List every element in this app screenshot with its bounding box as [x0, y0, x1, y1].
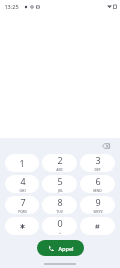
staticText: 5: [57, 175, 63, 187]
staticText: 8: [57, 196, 63, 208]
button[interactable]: 4: [5, 175, 39, 193]
staticText: ABC: [56, 167, 63, 172]
button[interactable]: 9: [80, 196, 115, 214]
staticText: PQRS: [18, 209, 27, 214]
staticText: 7: [20, 196, 26, 208]
button[interactable]: 7: [5, 196, 39, 214]
staticText: MNO: [93, 188, 102, 193]
staticText: WXYZ: [93, 209, 103, 214]
staticText: +: [59, 230, 61, 235]
button[interactable]: 8: [42, 196, 77, 214]
button[interactable]: 6: [80, 175, 115, 193]
button[interactable]: 5: [42, 175, 77, 193]
staticText: 6: [95, 175, 101, 187]
staticText: JKL: [58, 188, 63, 193]
staticText: 3: [95, 154, 101, 166]
button[interactable]: 1: [5, 154, 39, 172]
staticText: 1: [19, 157, 25, 169]
button[interactable]: 0: [42, 217, 77, 235]
staticText: 13:25: [4, 3, 19, 10]
staticText: Appel: [58, 245, 74, 252]
staticText: TUV: [56, 209, 63, 214]
staticText: 4: [20, 175, 26, 187]
button[interactable]: [5, 217, 39, 235]
button[interactable]: 3: [80, 154, 115, 172]
staticText: GHI: [19, 188, 26, 193]
button[interactable]: [80, 217, 115, 235]
staticText: 0: [57, 217, 63, 229]
staticText: 9: [95, 196, 101, 208]
button[interactable]: Appel: [37, 240, 84, 256]
staticText: 2: [57, 154, 63, 166]
staticText: DEF: [94, 167, 101, 172]
button[interactable]: Backspace: [100, 140, 112, 152]
button[interactable]: 2: [42, 154, 77, 172]
